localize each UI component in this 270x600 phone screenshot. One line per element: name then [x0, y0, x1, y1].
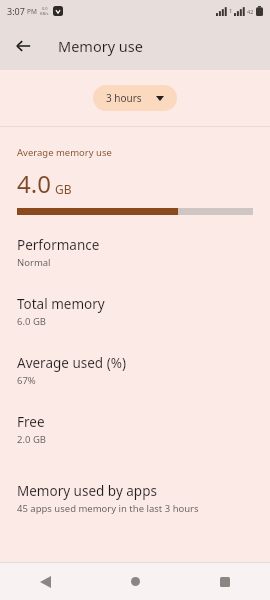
staticText: PM	[27, 7, 37, 16]
button[interactable]: Recents	[180, 563, 270, 600]
staticText: Free	[17, 413, 45, 431]
button[interactable]: Home	[90, 563, 180, 600]
staticText: 0.0	[42, 6, 48, 11]
staticText: Memory used by apps	[17, 482, 157, 500]
staticText: Memory use	[58, 36, 143, 56]
button[interactable]: Average used (%)	[0, 328, 270, 387]
staticText: GB	[55, 181, 72, 197]
button[interactable]: Total memory	[0, 269, 270, 328]
button[interactable]: Performance	[0, 215, 270, 269]
staticText: Average memory use	[17, 146, 112, 159]
staticText: KB/s	[40, 11, 49, 16]
staticText: Average used (%)	[17, 354, 126, 372]
staticText: 3:07	[7, 5, 25, 17]
staticText: 3 hours	[106, 91, 142, 105]
button[interactable]: 3 hours	[93, 85, 177, 111]
staticText: 1	[229, 7, 233, 15]
staticText: 45 apps used memory in the last 3 hours	[17, 502, 199, 515]
staticText: 67%	[17, 374, 36, 387]
staticText: Performance	[17, 236, 100, 254]
staticText: Total memory	[17, 295, 105, 313]
staticText: 42	[247, 8, 254, 15]
staticText: 6.0 GB	[17, 315, 46, 328]
staticText: Normal	[17, 256, 51, 269]
button[interactable]: Free	[0, 387, 270, 446]
staticText: 2.0 GB	[17, 433, 46, 446]
button[interactable]: Memory used by apps	[0, 482, 270, 515]
button[interactable]: Back	[0, 563, 90, 600]
staticText: 4.0	[17, 167, 51, 200]
button[interactable]: Back	[6, 29, 40, 63]
